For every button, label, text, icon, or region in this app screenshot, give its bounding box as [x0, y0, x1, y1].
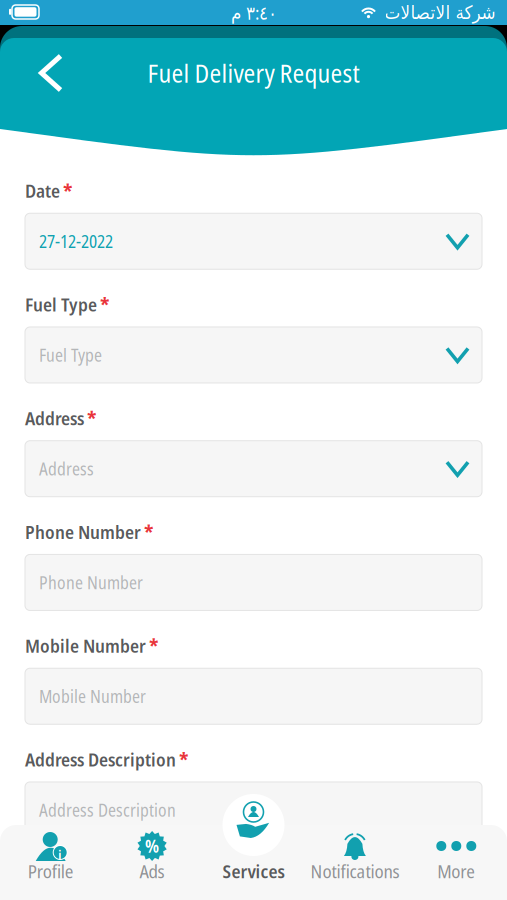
staticText: * — [87, 404, 96, 432]
button[interactable]: Services — [203, 798, 304, 898]
staticText: Fuel Type — [25, 292, 97, 317]
staticText: * — [144, 518, 153, 545]
staticText: Date — [25, 178, 60, 203]
staticText: * — [63, 177, 72, 204]
staticText: Mobile Number — [39, 684, 146, 708]
staticText: Address Description — [39, 798, 176, 822]
button[interactable]: 27-12-2022 — [25, 213, 482, 269]
staticText: Phone Number — [25, 519, 141, 544]
button[interactable]: More — [406, 798, 507, 898]
staticText: Fuel Delivery Request — [147, 56, 359, 90]
staticText: ٣:٤٠ م — [230, 0, 276, 25]
staticText: Notifications — [310, 858, 399, 884]
button[interactable]: Phone Number — [25, 554, 482, 610]
staticText: * — [149, 632, 158, 659]
button[interactable]: Notifications — [304, 798, 406, 898]
button[interactable]: i — [0, 798, 101, 898]
staticText: Address — [25, 405, 84, 431]
staticText: Services — [222, 858, 284, 884]
staticText: Phone Number — [39, 571, 143, 594]
button[interactable]: Mobile Number — [25, 668, 482, 724]
button[interactable]: % — [101, 798, 203, 898]
staticText: شركة الاتصالات — [384, 2, 495, 23]
staticText: More — [437, 858, 475, 884]
button[interactable]: Back — [22, 44, 80, 102]
button[interactable]: Address Description — [25, 782, 482, 838]
staticText: Mobile Number — [25, 633, 146, 658]
staticText: Fuel Type — [39, 343, 102, 367]
button[interactable]: Fuel Type — [25, 327, 482, 383]
staticText: Profile — [28, 858, 74, 884]
staticText: * — [179, 746, 188, 773]
staticText: i — [58, 847, 61, 863]
staticText: % — [145, 834, 159, 858]
button[interactable]: Address — [25, 441, 482, 497]
staticText: 27-12-2022 — [39, 229, 113, 253]
staticText: Address Description — [25, 747, 176, 772]
staticText: * — [100, 291, 109, 318]
staticText: Ads — [140, 858, 165, 884]
staticText: Address — [39, 457, 94, 480]
